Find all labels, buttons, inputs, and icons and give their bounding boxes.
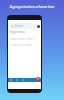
staticText: Buscar <box>15 24 24 28</box>
staticText: consectetur adipis <box>10 43 33 47</box>
button[interactable]: Add <box>36 77 40 81</box>
staticText: Lorem ipsum dolor <box>10 37 34 41</box>
staticText: Agrega textos a favoritos <box>0 4 64 9</box>
staticText: Sugerencias <box>10 30 26 34</box>
button[interactable]: Account <box>37 25 40 28</box>
button[interactable]: Buscar <box>10 23 36 29</box>
button[interactable] <box>8 78 41 82</box>
